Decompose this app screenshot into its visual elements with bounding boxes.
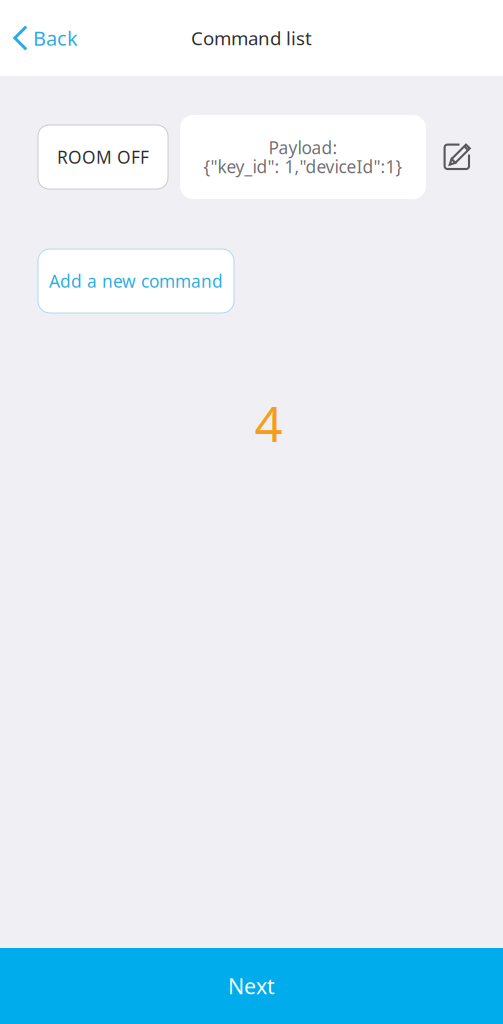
button[interactable]: Add a new command (38, 249, 234, 313)
button[interactable]: Payload: (180, 115, 426, 199)
staticText: Command list (191, 26, 312, 50)
button[interactable]: Next (0, 948, 503, 1024)
staticText: Back (33, 25, 78, 51)
button[interactable]: Edit command (437, 137, 477, 177)
button[interactable]: Back (0, 16, 88, 60)
staticText: 4 (254, 390, 282, 455)
staticText: Payload: (268, 136, 337, 159)
staticText: Add a new command (49, 269, 223, 292)
button[interactable]: ROOM OFF (38, 125, 168, 189)
staticText: ROOM OFF (57, 145, 149, 168)
staticText: {"key_id": 1,"deviceId":1} (203, 155, 402, 178)
staticText: Next (228, 972, 275, 1000)
